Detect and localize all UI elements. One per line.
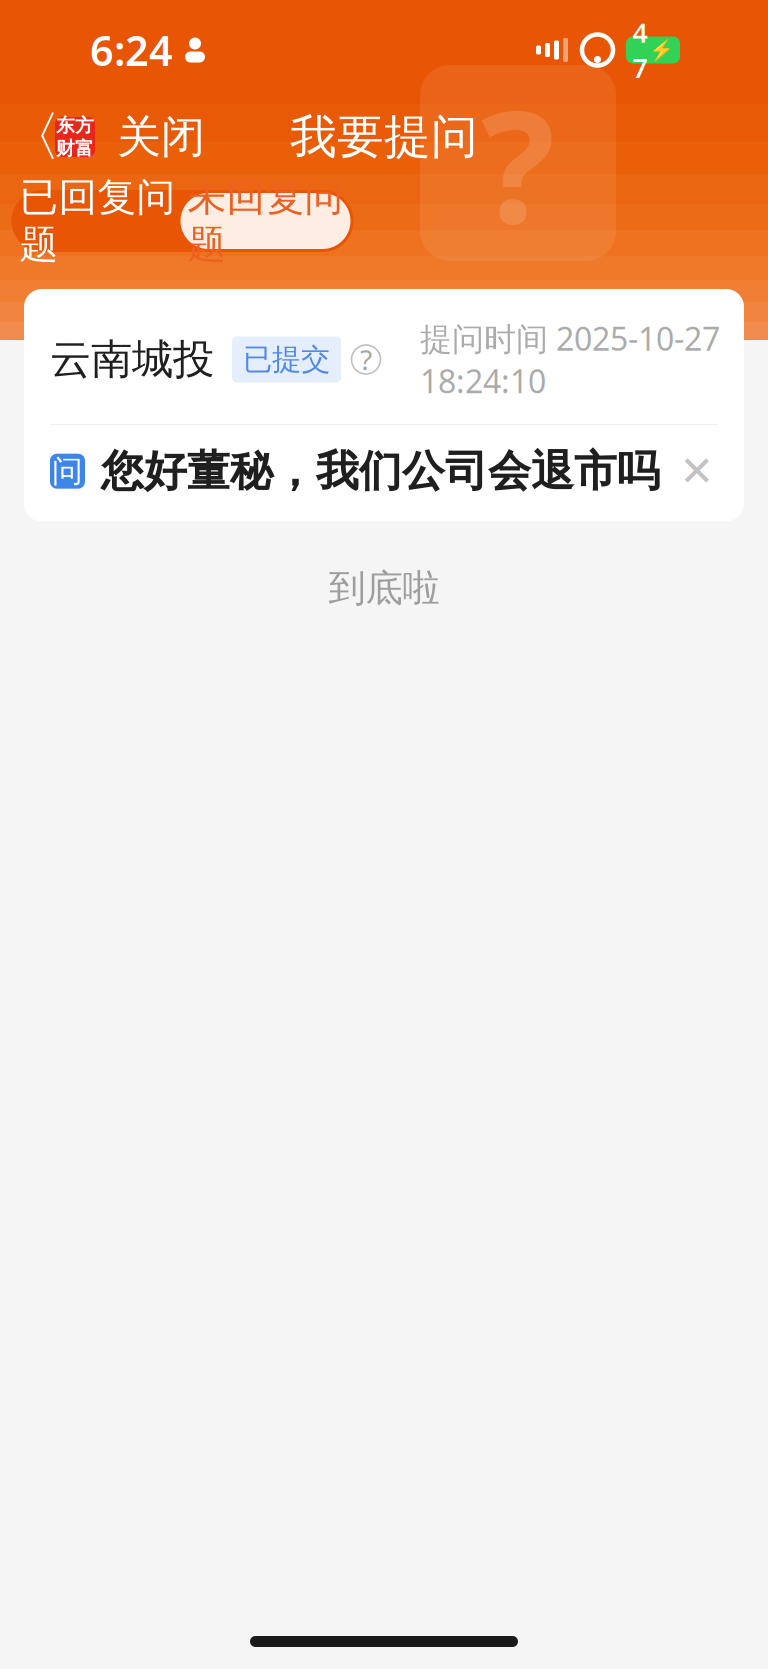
staticText: 关闭 (117, 110, 205, 164)
staticText: ⚡ (648, 39, 673, 61)
button[interactable]: 返回 (0, 104, 101, 170)
staticText: 您好董秘，我们公司会退市吗 (101, 445, 660, 497)
staticText: 47 (632, 15, 647, 85)
staticText: 〈 (7, 104, 60, 170)
staticText: 我要提问 (290, 108, 478, 166)
staticText: 提问时间 2025-10-27 18:24:10 (420, 317, 720, 402)
staticText: 未回复问题 (187, 173, 343, 268)
button[interactable]: 删除提问 (672, 446, 722, 496)
staticText: 已回复问题 (19, 173, 175, 268)
staticText: 问 (52, 452, 83, 490)
staticText: 云南城投 (50, 334, 214, 385)
button[interactable]: 云南城投 (24, 289, 744, 521)
button[interactable]: 未回复问题 (180, 193, 350, 249)
button[interactable]: 关闭 (101, 104, 221, 170)
staticText: ? (481, 60, 555, 266)
staticText: 到底啦 (328, 565, 439, 611)
staticText: ? (360, 341, 372, 378)
staticText: 6:24 (90, 23, 173, 77)
button[interactable]: 已回复问题 (14, 193, 180, 249)
staticText: ✕ (679, 448, 714, 495)
staticText: 东方 (56, 114, 94, 137)
staticText: 财富 (56, 137, 94, 160)
staticText: 已提交 (243, 341, 330, 377)
